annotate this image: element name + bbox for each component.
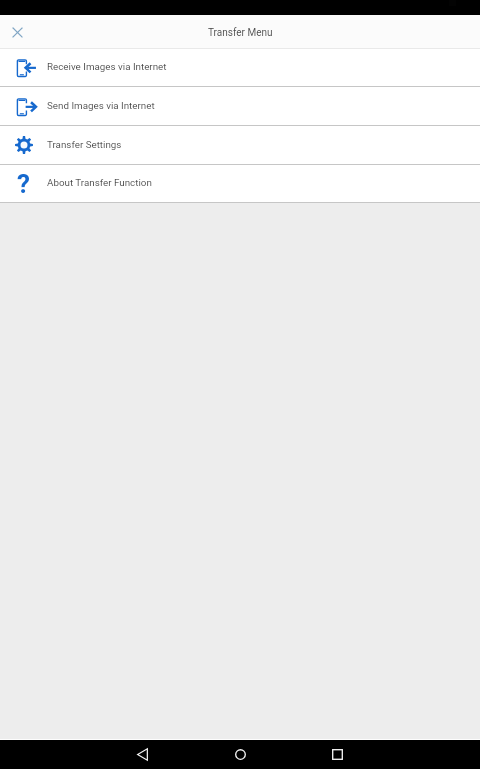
staticText: Receive Images via Internet (47, 61, 167, 72)
staticText: About Transfer Function (47, 177, 152, 188)
staticText: Transfer Menu (208, 27, 273, 39)
button[interactable]: Close (0, 15, 34, 48)
staticText: ? (17, 169, 30, 199)
staticText: Transfer Settings (47, 139, 122, 150)
button[interactable]: Send Images via Internet (0, 87, 480, 125)
button[interactable]: Transfer Settings (0, 126, 480, 164)
button[interactable]: Receive Images via Internet (0, 49, 480, 86)
button[interactable]: Back (112, 740, 172, 769)
button[interactable]: ? (0, 165, 480, 202)
staticText: Send Images via Internet (47, 100, 155, 111)
button[interactable]: Recent apps (307, 740, 367, 769)
button[interactable]: Home (210, 740, 270, 769)
